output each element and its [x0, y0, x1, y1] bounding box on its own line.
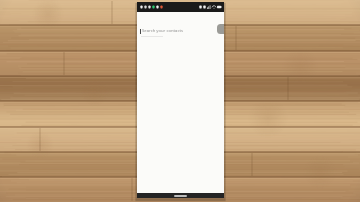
button[interactable]: Scroll handle — [217, 24, 224, 34]
button[interactable]: Search your contacts — [140, 28, 221, 34]
button[interactable]: Home — [174, 195, 187, 197]
staticText: Search your contacts — [142, 28, 183, 34]
